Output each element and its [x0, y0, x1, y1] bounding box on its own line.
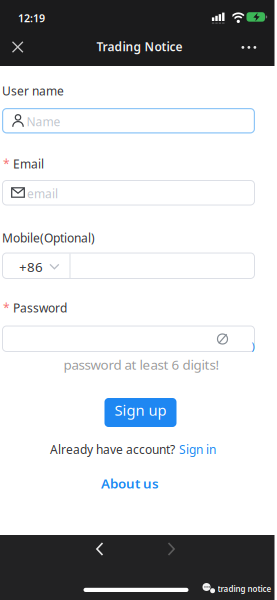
- staticText: Email: [13, 156, 44, 172]
- staticText: 12:19: [18, 11, 45, 25]
- button[interactable]: Country code +86: [19, 258, 59, 276]
- button[interactable]: About us: [101, 474, 159, 492]
- button[interactable]: Sign in: [179, 441, 216, 457]
- staticText: +86: [19, 258, 43, 276]
- staticText: Password: [13, 300, 67, 316]
- staticText: Sign up: [114, 400, 166, 420]
- staticText: Mobile(Optional): [2, 230, 95, 246]
- staticText: User name: [2, 83, 64, 99]
- button[interactable]: Back: [0, 0, 274, 600]
- staticText: ): [251, 339, 254, 353]
- staticText: *: [3, 300, 10, 316]
- staticText: Name: [26, 114, 60, 129]
- staticText: Sign in: [179, 441, 216, 457]
- staticText: trading notice: [217, 584, 271, 594]
- staticText: Already have account?: [50, 441, 175, 457]
- staticText: About us: [101, 474, 159, 492]
- button[interactable]: Show password: [216, 333, 228, 345]
- staticText: email: [27, 186, 58, 201]
- button[interactable]: Forward: [0, 0, 274, 600]
- staticText: password at least 6 digits!: [63, 356, 219, 373]
- button[interactable]: Sign up: [104, 398, 176, 427]
- button[interactable]: More: [241, 46, 256, 49]
- button[interactable]: Close: [0, 0, 274, 600]
- staticText: Trading Notice: [96, 39, 182, 55]
- staticText: *: [3, 156, 10, 172]
